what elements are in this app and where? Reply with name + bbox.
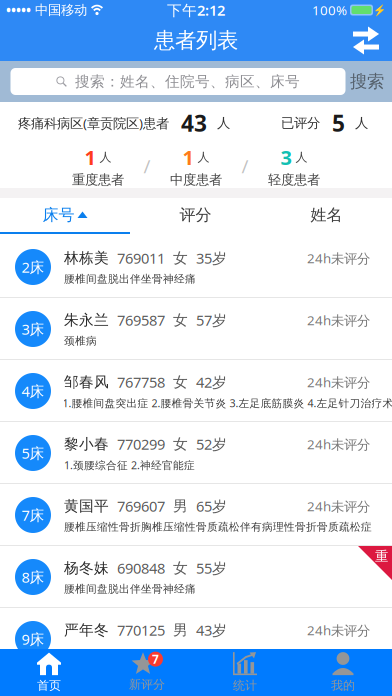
staticText: 24h未评分 [307,497,370,515]
staticText: 黎小春 [64,435,109,453]
button[interactable]: 首页 [0,649,98,696]
staticText: 邹春风 [64,373,109,391]
staticText: 中国移动 [31,2,91,18]
button[interactable]: 2床 [0,236,392,298]
staticText: 65岁 [188,496,227,516]
staticText: 颈椎病 [64,334,97,347]
staticText: 24h未评分 [307,621,370,639]
staticText: 下午2:12 [167,0,225,20]
staticText: 5 [320,108,351,138]
staticText: 已评分 [281,115,320,131]
staticText: ⚡ [373,4,386,16]
staticText: 7 [152,651,159,667]
staticText: 搜索 [350,71,384,92]
staticText: 女 [165,373,188,391]
staticText: 严年冬 [64,621,109,639]
staticText: 769607 [109,496,165,516]
button[interactable]: 7 [98,649,196,696]
staticText: 人 [351,115,368,131]
staticText: 重度患者 [72,172,124,188]
staticText: 769587 [109,310,165,330]
staticText: 9床 [21,629,44,649]
button[interactable]: 切换病区 [340,20,392,61]
staticText: 首页 [37,678,61,693]
staticText: 1 [182,144,193,171]
staticText: 人 [291,150,307,165]
staticText: 女 [165,435,188,453]
staticText: 人 [95,150,111,165]
button[interactable]: 3床 [0,298,392,360]
button[interactable]: 4床 [0,360,392,422]
staticText: 43 [169,108,213,138]
button[interactable]: 9床 [0,608,392,670]
button[interactable]: 搜索：姓名、住院号、病区、床号 [10,68,345,95]
staticText: 57岁 [188,310,227,330]
staticText: 男 [165,497,188,515]
button[interactable]: 我的 [294,649,392,696]
staticText: 24h未评分 [307,435,370,453]
staticText: 1.腰椎间盘突出症 2.腰椎骨关节炎 3.左足底筋膜炎 4.左足针刀治疗术 [62,396,392,410]
staticText: 轻度患者 [268,172,320,188]
button[interactable]: 统计 [196,649,294,696]
staticText: 女 [165,311,188,329]
staticText: 100% [312,1,347,19]
staticText: 男 [165,621,188,639]
staticText: 腰椎间盘脱出伴坐骨神经痛 [64,272,196,285]
staticText: 新评分 [129,677,165,692]
staticText: 55岁 [188,558,227,578]
staticText: 42岁 [188,372,227,392]
staticText: 770299 [109,434,165,454]
staticText: 690848 [109,558,165,578]
staticText: 24h未评分 [307,311,370,329]
staticText: 1 [84,144,95,171]
button[interactable]: 7床 [0,484,392,546]
staticText: / [241,154,248,178]
staticText: 林栋美 [64,249,109,267]
staticText: 我的 [331,678,355,693]
staticText: 女 [165,559,188,577]
staticText: 疼痛科病区(章贡院区)患者 [18,114,169,132]
staticText: 朱永兰 [64,311,109,329]
button[interactable]: 床号 [0,198,130,232]
staticText: 8床 [21,567,44,587]
staticText: 767758 [109,372,165,392]
staticText: 评分 [179,205,211,225]
button[interactable]: 搜索 [345,66,388,96]
staticText: 重 [375,548,388,564]
staticText: 腰椎压缩性骨折胸椎压缩性骨质疏松伴有病理性骨折骨质疏松症 [64,520,372,533]
staticText: 770125 [109,620,165,640]
staticText: 43岁 [188,620,227,640]
staticText: 3床 [21,319,44,339]
button[interactable]: 5床 [0,422,392,484]
staticText: 统计 [233,678,257,693]
staticText: 中度患者 [170,172,222,188]
staticText: 床号 [42,205,74,225]
staticText: 1.颈腰综合征 2.神经官能症 [64,458,195,472]
staticText: 患者列表 [154,27,238,54]
staticText: 2床 [21,257,44,277]
button[interactable]: 姓名 [261,198,392,232]
button[interactable]: 8床 [0,546,392,608]
staticText: / [143,154,150,178]
staticText: 搜索：姓名、住院号、病区、床号 [67,72,300,90]
staticText: 腰椎间盘脱出伴坐骨神经痛 [64,582,196,595]
staticText: 4床 [21,381,44,401]
staticText: 7床 [21,505,44,525]
staticText: 杨冬妹 [64,559,109,577]
staticText: 24h未评分 [307,249,370,267]
button[interactable]: 评分 [130,198,261,232]
staticText: 5床 [21,443,44,463]
staticText: 姓名 [310,205,342,225]
staticText: ••••• [6,1,31,19]
staticText: 3 [280,144,291,171]
staticText: 人 [193,150,209,165]
staticText: 769011 [109,248,165,268]
staticText: 人 [213,115,230,131]
staticText: 黄国平 [64,497,109,515]
staticText: 24h未评分 [307,373,370,391]
staticText: 35岁 [188,248,227,268]
staticText: 52岁 [188,434,227,454]
staticText: 女 [165,249,188,267]
